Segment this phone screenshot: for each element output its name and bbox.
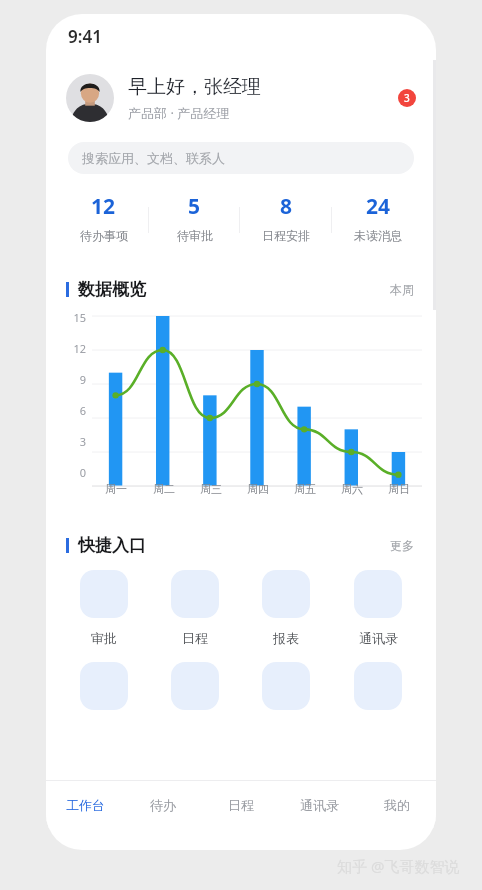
- staticText: 待审批: [177, 228, 213, 243]
- staticText: 通讯录: [300, 797, 339, 813]
- button[interactable]: 快捷入口: [149, 662, 240, 710]
- staticText: 24: [366, 192, 391, 221]
- button[interactable]: 5: [149, 192, 240, 248]
- staticText: 知乎 @飞哥数智说: [337, 856, 460, 876]
- staticText: 9:41: [68, 25, 102, 48]
- staticText: 日程: [228, 797, 254, 813]
- staticText: 快捷入口: [78, 535, 146, 556]
- button[interactable]: 快捷入口: [58, 662, 149, 710]
- staticText: 通讯录: [359, 630, 398, 646]
- staticText: 3: [404, 91, 410, 105]
- other: 快捷入口: [262, 662, 310, 710]
- staticText: 工作台: [66, 797, 105, 813]
- button[interactable]: 搜索应用、文档、联系人: [68, 142, 414, 174]
- button[interactable]: 日程: [149, 570, 240, 646]
- staticText: 周四: [247, 482, 269, 496]
- staticText: 产品部 · 产品经理: [128, 104, 230, 122]
- button[interactable]: 24: [332, 192, 424, 248]
- staticText: 12: [64, 341, 86, 356]
- staticText: 3: [64, 434, 86, 449]
- button[interactable]: 更多: [390, 538, 414, 553]
- button[interactable]: 工作台: [46, 781, 124, 828]
- button[interactable]: 快捷入口: [332, 662, 424, 710]
- staticText: 9: [64, 372, 86, 387]
- button[interactable]: 通讯录: [280, 781, 358, 828]
- staticText: 未读消息: [354, 228, 402, 243]
- button[interactable]: 通讯录: [332, 570, 424, 646]
- staticText: 周二: [153, 482, 175, 496]
- other: 快捷入口: [171, 662, 219, 710]
- staticText: 6: [64, 403, 86, 418]
- button[interactable]: 通知: [398, 89, 416, 107]
- staticText: 5: [188, 192, 201, 221]
- staticText: 15: [64, 310, 86, 325]
- staticText: 周三: [200, 482, 222, 496]
- other: 快捷入口: [354, 662, 402, 710]
- button[interactable]: 8: [240, 192, 332, 248]
- staticText: 周五: [294, 482, 316, 496]
- button[interactable]: 快捷入口: [240, 662, 332, 710]
- staticText: 报表: [273, 630, 299, 646]
- staticText: 周一: [105, 482, 127, 496]
- staticText: 审批: [91, 630, 117, 646]
- staticText: 0: [64, 465, 86, 480]
- staticText: 本周: [390, 282, 414, 297]
- staticText: 日程安排: [262, 228, 310, 243]
- staticText: 周日: [388, 482, 410, 496]
- staticText: 搜索应用、文档、联系人: [82, 150, 225, 166]
- button[interactable]: 我的: [358, 781, 436, 828]
- button[interactable]: 日程: [202, 781, 280, 828]
- button[interactable]: 12: [58, 192, 149, 248]
- staticText: 周六: [341, 482, 363, 496]
- staticText: 12: [91, 192, 116, 221]
- other: 快捷入口: [80, 662, 128, 710]
- staticText: 数据概览: [78, 279, 146, 300]
- button[interactable]: 待办: [124, 781, 202, 828]
- staticText: 8: [280, 192, 293, 221]
- staticText: 早上好，张经理: [128, 75, 261, 99]
- button[interactable]: 报表: [240, 570, 332, 646]
- staticText: 待办事项: [80, 228, 128, 243]
- staticText: 更多: [390, 538, 414, 553]
- staticText: 待办: [150, 797, 176, 813]
- staticText: 我的: [384, 797, 410, 813]
- staticText: 日程: [182, 630, 208, 646]
- button[interactable]: 审批: [58, 570, 149, 646]
- button[interactable]: 本周: [390, 282, 414, 297]
